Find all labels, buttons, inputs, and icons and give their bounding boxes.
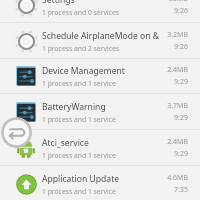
staticText: 1 process and 1 service bbox=[42, 115, 116, 124]
staticText: 2.4MB bbox=[167, 137, 188, 147]
staticText: 9:26 bbox=[174, 42, 188, 52]
button[interactable]: Back bbox=[1, 117, 32, 148]
button[interactable]: Atci_service bbox=[0, 130, 200, 166]
staticText: 3.2MB bbox=[167, 30, 188, 40]
staticText: Device Management bbox=[42, 65, 125, 77]
staticText: 9:29 bbox=[174, 113, 188, 123]
button[interactable]: Settings bbox=[0, 0, 200, 23]
staticText: 1 process and 1 service bbox=[42, 151, 116, 160]
staticText: 7:35 bbox=[174, 185, 188, 195]
button[interactable]: BatteryWarning bbox=[0, 94, 200, 130]
staticText: 9:29 bbox=[174, 149, 188, 159]
staticText: 3.7MB bbox=[167, 101, 188, 111]
staticText: 1 process and 1 service bbox=[42, 187, 116, 196]
staticText: 2.4MB bbox=[167, 65, 188, 75]
staticText: 9:26 bbox=[174, 6, 188, 16]
staticText: 1 process and 0 services bbox=[42, 8, 120, 17]
staticText: 4.6MB bbox=[167, 173, 188, 183]
staticText: Schedule AirplaneMode on & bbox=[42, 30, 160, 42]
staticText: Atci_service bbox=[42, 137, 89, 149]
staticText: 53MB bbox=[169, 0, 188, 4]
staticText: 9:29 bbox=[174, 77, 188, 87]
staticText: 1 process and 1 service bbox=[42, 79, 116, 88]
staticText: BatteryWarning bbox=[42, 101, 106, 113]
button[interactable]: Device Management bbox=[0, 58, 200, 94]
staticText: Application Update bbox=[42, 173, 120, 185]
button[interactable]: Application Update bbox=[0, 166, 200, 200]
staticText: Settings bbox=[42, 0, 75, 6]
staticText: 1 process and 2 services bbox=[42, 44, 120, 53]
button[interactable]: Schedule AirplaneMode on & bbox=[0, 23, 200, 59]
